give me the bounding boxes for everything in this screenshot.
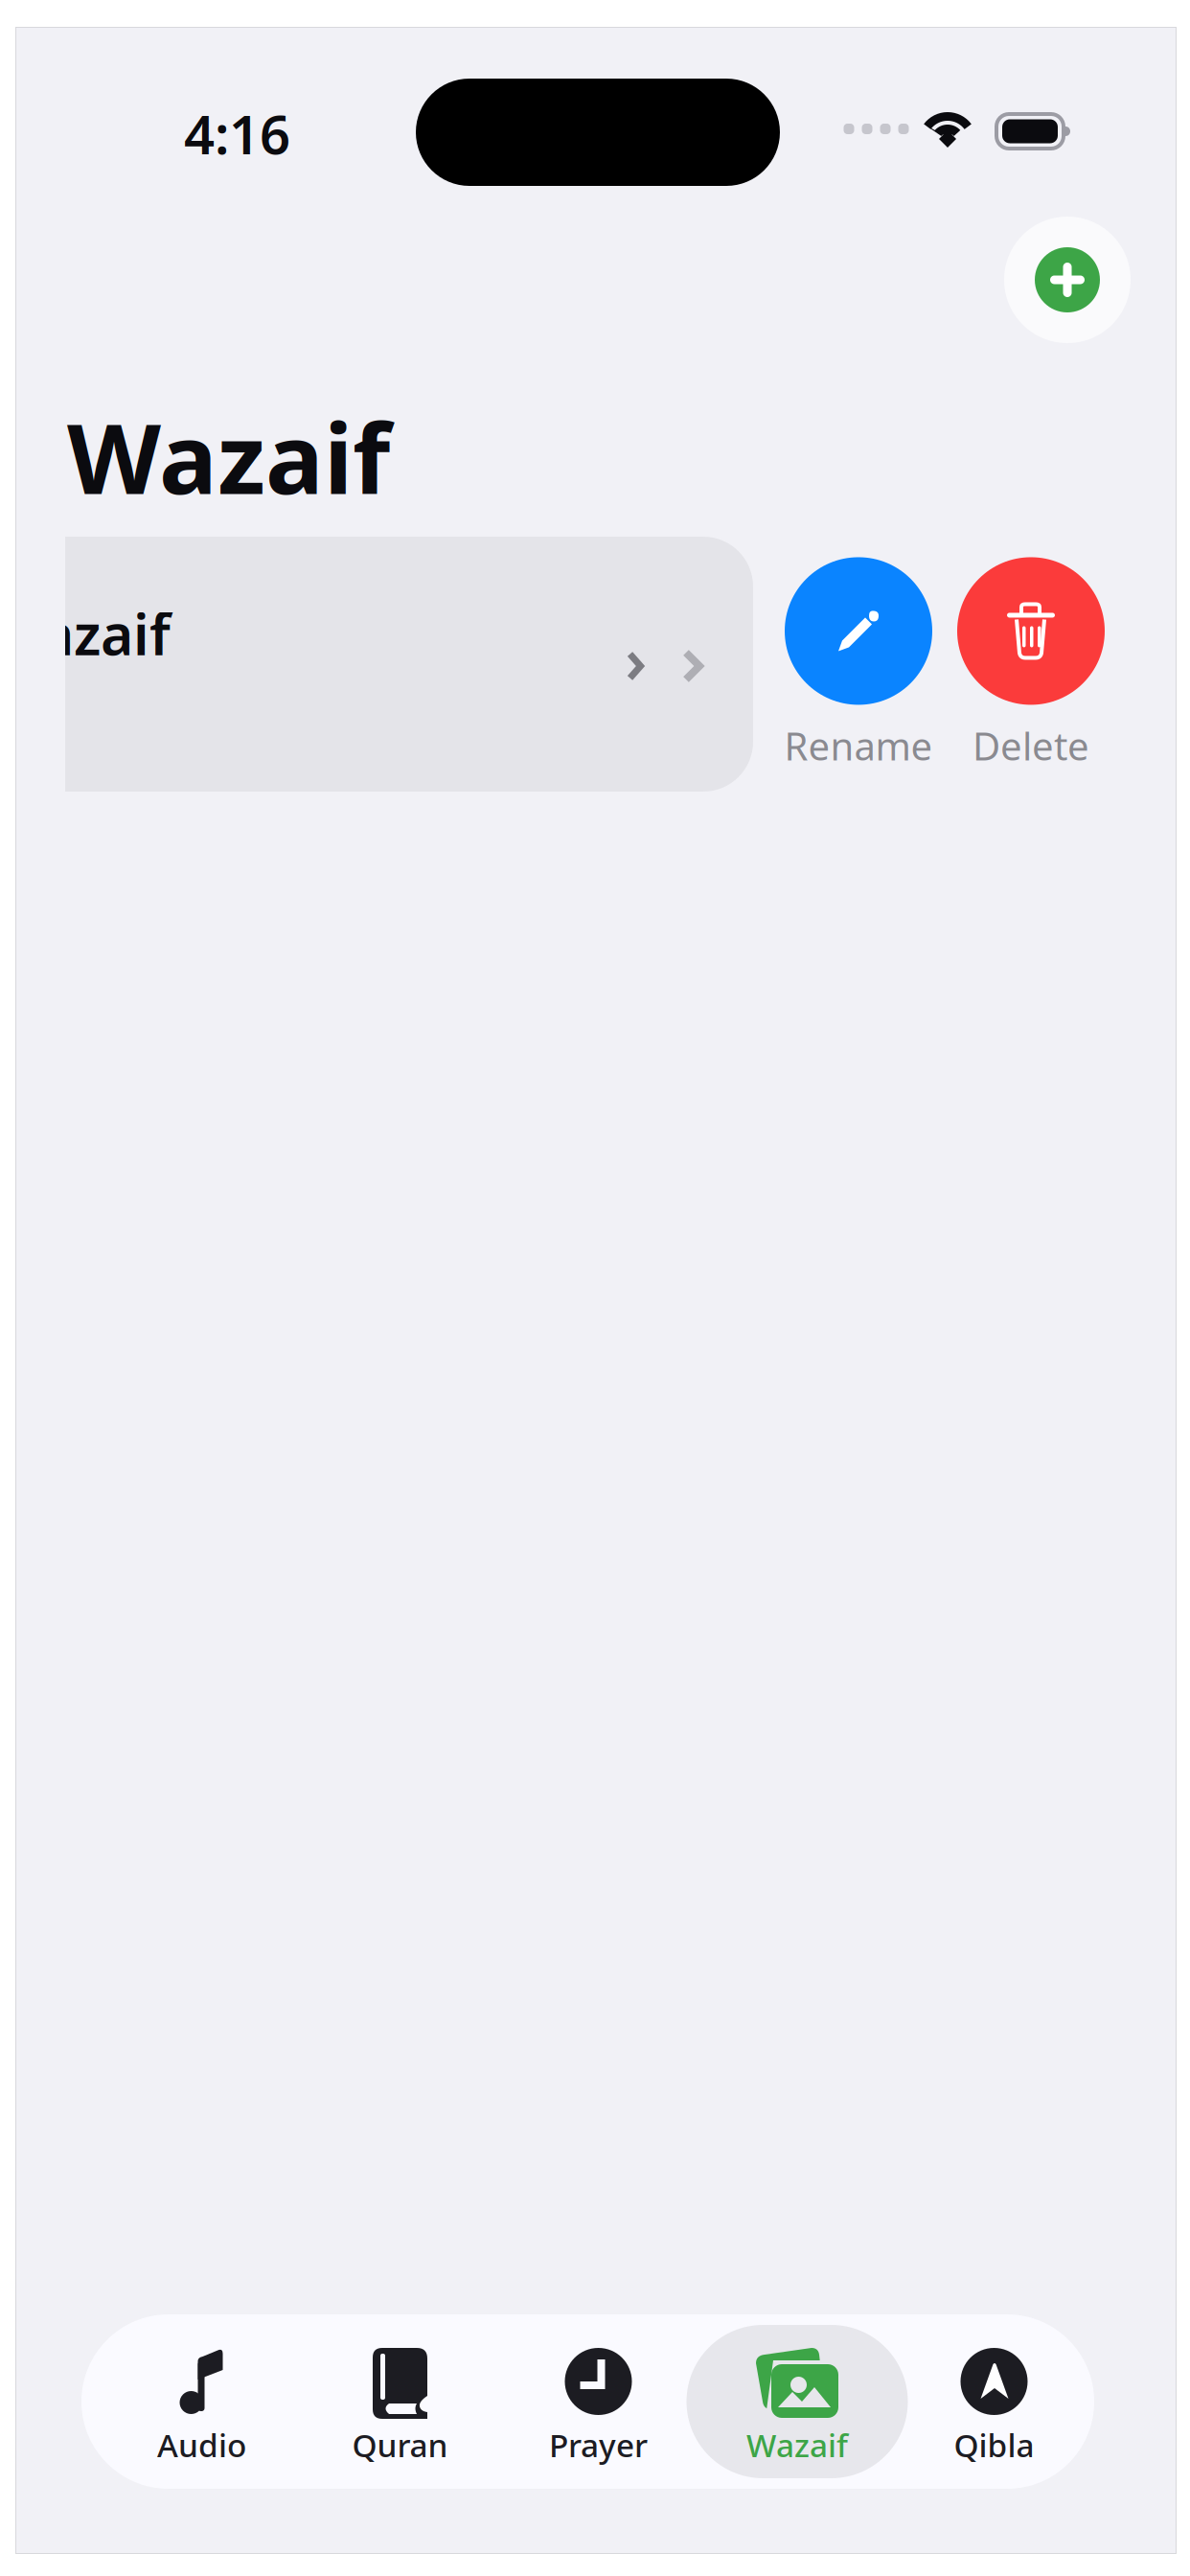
button[interactable]: Wazaif [687, 2314, 908, 2489]
staticText: Wazaif [0, 596, 171, 671]
staticText: Prayer [549, 2424, 648, 2466]
staticText: Wazaif [746, 2424, 848, 2466]
button[interactable]: Delete [945, 554, 1117, 774]
staticText: Quran [352, 2424, 448, 2466]
staticText: Delete [973, 720, 1089, 771]
button[interactable]: Audio [91, 2314, 312, 2489]
button[interactable]: Prayer [488, 2314, 709, 2489]
staticText: Qibla [954, 2424, 1034, 2466]
button[interactable]: Add [1004, 217, 1131, 343]
button[interactable]: Rename [772, 554, 945, 774]
staticText: Rename [784, 720, 933, 771]
staticText: Audio [157, 2424, 246, 2466]
staticText: Wazaif [67, 392, 390, 521]
button[interactable]: Wazaif [0, 537, 753, 792]
button[interactable]: Quran [289, 2314, 511, 2489]
button[interactable]: Qibla [883, 2314, 1105, 2489]
staticText: 4:16 [184, 98, 290, 169]
